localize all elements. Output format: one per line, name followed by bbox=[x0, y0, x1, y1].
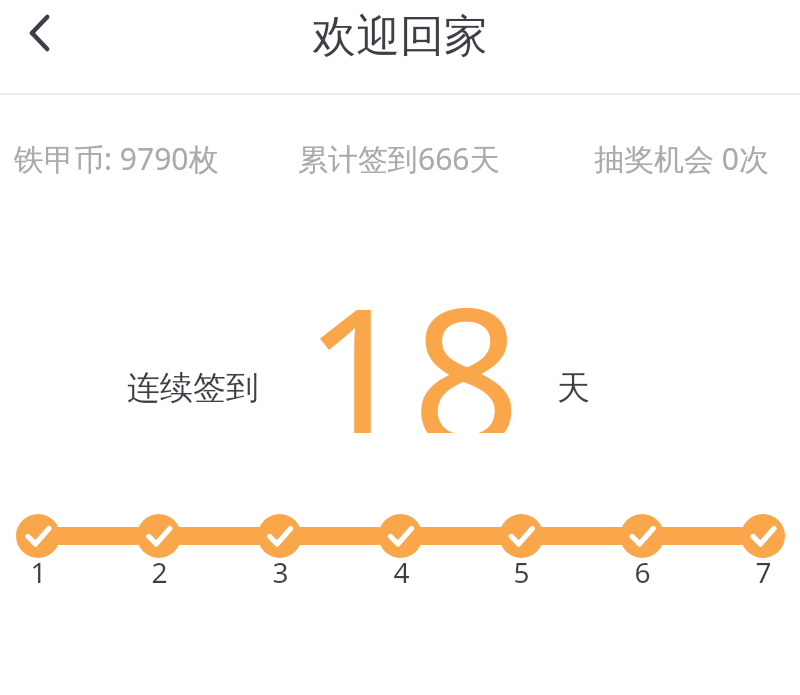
staticText: 182 bbox=[262, 243, 562, 433]
button[interactable]: 抽奖机会 0次 bbox=[594, 137, 769, 179]
staticText: 5 bbox=[513, 553, 530, 591]
button[interactable]: Day 3 signed in bbox=[250, 506, 310, 598]
staticText: 天 bbox=[557, 367, 590, 409]
button[interactable]: 铁甲币: 9790枚 bbox=[14, 137, 219, 179]
button[interactable]: Day 7 signed in bbox=[733, 506, 793, 598]
staticText: 2 bbox=[151, 553, 168, 591]
button[interactable]: Day 2 signed in bbox=[129, 506, 189, 598]
button[interactable]: Day 6 signed in bbox=[612, 506, 672, 598]
staticText: 7 bbox=[755, 553, 772, 591]
staticText: 3 bbox=[272, 553, 289, 591]
staticText: 4 bbox=[393, 553, 410, 591]
button[interactable]: Day 1 signed in bbox=[8, 506, 68, 598]
staticText: 连续签到 bbox=[127, 367, 259, 409]
staticText: 6 bbox=[634, 553, 651, 591]
button[interactable]: Day 4 signed in bbox=[371, 506, 431, 598]
button[interactable]: Day 5 signed in bbox=[491, 506, 551, 598]
button[interactable]: Back bbox=[8, 0, 80, 66]
staticText: 累计签到666天 bbox=[298, 138, 500, 179]
staticText: 抽奖机会 0次 bbox=[594, 138, 769, 179]
button[interactable]: 累计签到666天 bbox=[298, 137, 500, 179]
staticText: 铁甲币: 9790枚 bbox=[14, 138, 219, 179]
staticText: 欢迎回家 bbox=[312, 9, 488, 64]
staticText: 1 bbox=[30, 553, 47, 591]
